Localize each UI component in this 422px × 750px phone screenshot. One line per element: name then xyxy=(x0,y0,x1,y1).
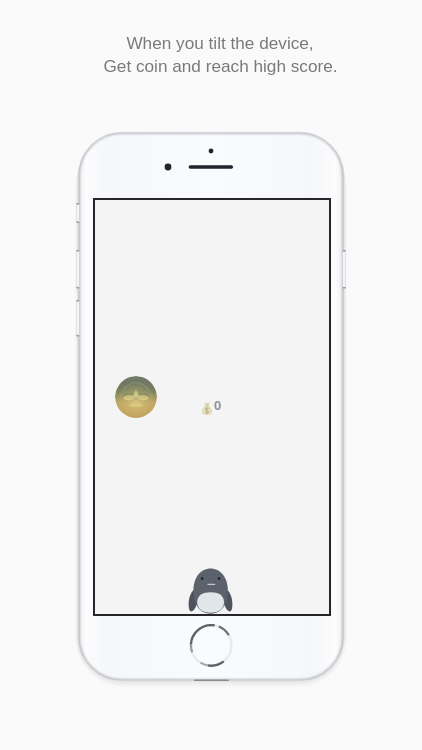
button[interactable]: Home button xyxy=(191,625,232,666)
button[interactable]: Coins collected xyxy=(202,398,222,413)
staticText: When you tilt the device, xyxy=(126,33,314,52)
button[interactable]: Penguin character xyxy=(188,568,233,614)
staticText: 0 xyxy=(214,398,222,413)
button[interactable]: Game screen, tilt to play xyxy=(93,198,331,616)
staticText: Get coin and reach high score. xyxy=(103,56,338,75)
button[interactable]: Coin xyxy=(115,376,157,418)
